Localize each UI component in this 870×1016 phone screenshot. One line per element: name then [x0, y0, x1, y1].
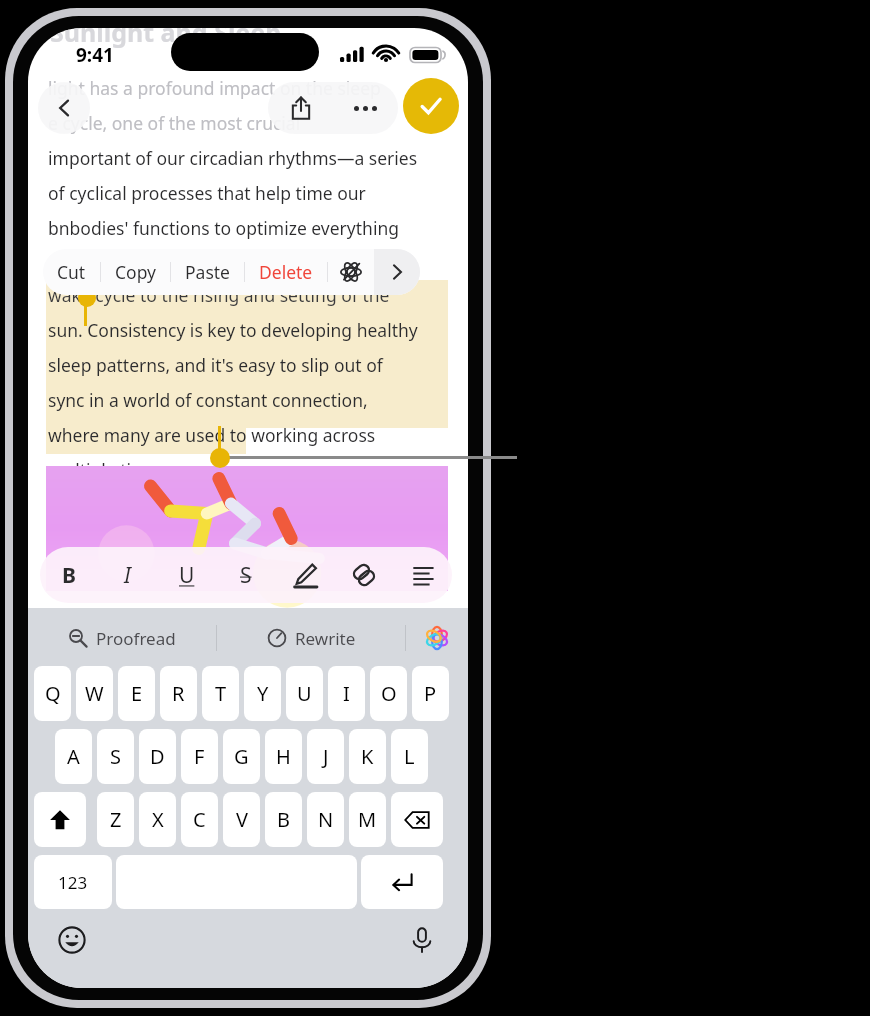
button[interactable]: 123 — [34, 855, 112, 909]
staticText: G — [234, 743, 249, 770]
staticText: bnbodies' functions to optimize everythi… — [48, 216, 399, 240]
staticText: multiple timezones. — [48, 458, 210, 482]
button[interactable]: Y — [244, 666, 281, 721]
staticText: B — [62, 561, 76, 590]
button[interactable]: Proofread — [28, 610, 216, 666]
staticText: H — [276, 743, 291, 770]
button[interactable]: P — [412, 666, 449, 721]
staticText: sun. Consistency is key to developing he… — [48, 318, 418, 342]
staticText: O — [381, 680, 397, 707]
staticText: S — [110, 743, 121, 770]
staticText: X — [152, 806, 164, 833]
staticText: D — [150, 743, 165, 770]
button[interactable]: G — [223, 729, 260, 784]
staticText: S — [240, 561, 252, 590]
button[interactable]: Apple Intelligence — [406, 610, 468, 666]
staticText: I — [343, 680, 350, 707]
button[interactable]: J — [307, 729, 344, 784]
staticText: F — [194, 743, 205, 770]
button[interactable]: U — [286, 666, 323, 721]
button[interactable]: X — [139, 792, 176, 847]
button[interactable]: Strikethrough — [216, 547, 275, 603]
staticText: exposure to sunlight helps link our slee… — [48, 258, 387, 282]
button[interactable]: Return — [361, 855, 443, 909]
button[interactable]: Copy — [115, 249, 156, 295]
button[interactable]: F — [181, 729, 218, 784]
staticText: M — [358, 806, 377, 833]
staticText: wake cycle to the rising and setting of … — [48, 283, 390, 307]
button[interactable]: Rewrite — [217, 610, 405, 666]
button[interactable]: D — [139, 729, 176, 784]
staticText: P — [424, 680, 437, 707]
staticText: Y — [257, 680, 269, 707]
staticText: from wakefulness to digestion. Lots of — [48, 251, 362, 275]
button[interactable]: H — [265, 729, 302, 784]
staticText: I — [124, 561, 131, 590]
staticText: Proofread — [96, 627, 176, 650]
button[interactable]: Done — [403, 78, 459, 134]
button[interactable]: Q — [34, 666, 71, 721]
staticText: U — [297, 680, 312, 707]
button[interactable]: M — [349, 792, 386, 847]
button[interactable]: V — [223, 792, 260, 847]
button[interactable]: T — [202, 666, 239, 721]
staticText: J — [323, 743, 329, 770]
button[interactable]: Delete — [391, 792, 443, 847]
button[interactable]: Apple Intelligence — [328, 249, 374, 295]
staticText: T — [215, 680, 227, 707]
staticText: important of our circadian rhythms—a ser… — [48, 146, 418, 170]
button[interactable]: K — [349, 729, 386, 784]
staticText: Z — [110, 806, 122, 833]
button[interactable]: More options — [333, 82, 398, 134]
button[interactable]: C — [181, 792, 218, 847]
button[interactable]: More — [374, 249, 420, 295]
staticText: N — [318, 806, 334, 833]
button[interactable]: Bold — [40, 547, 98, 603]
button[interactable]: W — [76, 666, 113, 721]
staticText: sleep patterns, and it's easy to slip ou… — [48, 353, 383, 377]
staticText: Sunlight and Sleep — [50, 28, 282, 49]
button[interactable]: B — [265, 792, 302, 847]
staticText: A — [67, 743, 80, 770]
button[interactable]: Cut — [57, 249, 86, 295]
staticText: E — [131, 680, 143, 707]
staticText: 123 — [58, 871, 88, 894]
button[interactable]: Paste — [185, 249, 230, 295]
button[interactable]: O — [370, 666, 407, 721]
staticText: Copy — [115, 260, 156, 284]
staticText: where many are used to working across — [48, 423, 376, 447]
button[interactable]: Share — [268, 82, 333, 134]
staticText: K — [361, 743, 374, 770]
button[interactable]: Highlight — [275, 547, 334, 603]
button[interactable]: S — [97, 729, 134, 784]
staticText: Delete — [259, 260, 313, 284]
staticText: L — [404, 743, 415, 770]
button[interactable]: Dictate — [400, 918, 444, 962]
button[interactable]: N — [307, 792, 344, 847]
staticText: sync in a world of constant connection, — [48, 388, 368, 412]
staticText: U — [179, 561, 195, 590]
button[interactable]: Italic — [98, 547, 157, 603]
button[interactable]: List — [393, 547, 452, 603]
staticText: light has a profound impact on the sleep — [48, 76, 381, 100]
button[interactable]: R — [160, 666, 197, 721]
staticText: B — [277, 806, 290, 833]
button[interactable]: Emoji — [50, 918, 94, 962]
button[interactable]: Link — [334, 547, 393, 603]
button[interactable]: Back — [38, 82, 90, 134]
staticText: Rewrite — [295, 627, 356, 650]
button[interactable]: E — [118, 666, 155, 721]
button[interactable]: L — [391, 729, 428, 784]
button[interactable]: A — [55, 729, 92, 784]
staticText: W — [85, 680, 104, 707]
button[interactable]: I — [328, 666, 365, 721]
button[interactable]: Z — [97, 792, 134, 847]
staticText: C — [193, 806, 206, 833]
staticText: e cycle, one of the most crucial — [48, 111, 301, 135]
staticText: Cut — [57, 260, 86, 284]
button[interactable]: Shift — [34, 792, 86, 847]
staticText: R — [172, 680, 185, 707]
button[interactable]: Underline — [157, 547, 216, 603]
button[interactable]: Delete — [259, 249, 313, 295]
